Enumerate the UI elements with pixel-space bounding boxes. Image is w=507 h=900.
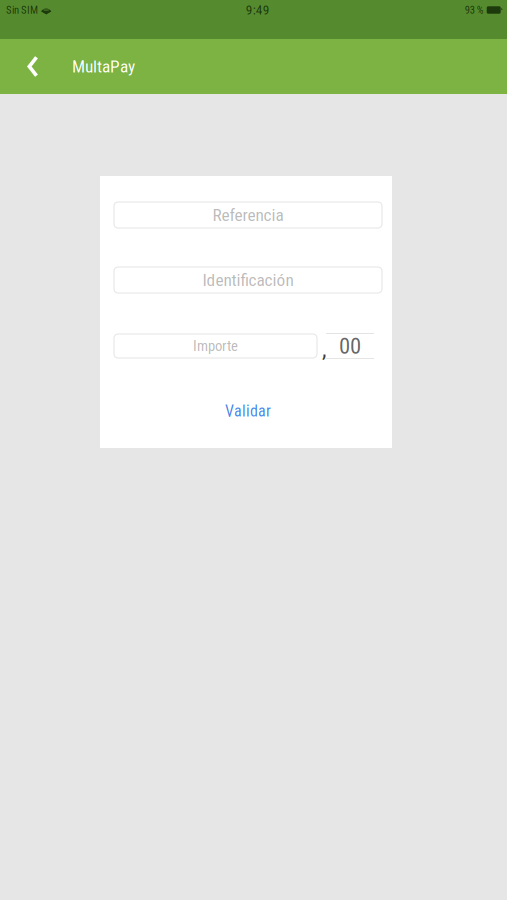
staticText: MultaPay — [72, 56, 135, 77]
staticText: 00 — [339, 333, 361, 359]
staticText: Referencia — [212, 205, 283, 225]
button[interactable]: Referencia — [114, 202, 382, 228]
staticText: Importe — [193, 337, 238, 355]
staticText: Validar — [225, 402, 271, 420]
staticText: Identificación — [202, 270, 293, 290]
button[interactable]: Validar — [114, 398, 382, 424]
staticText: Sin SIM — [6, 4, 38, 16]
button[interactable]: Back — [11, 39, 55, 94]
button[interactable]: Importe — [114, 334, 317, 358]
staticText: , — [322, 335, 326, 362]
button[interactable]: Identificación — [114, 267, 382, 293]
staticText: 9:49 — [246, 2, 270, 18]
staticText: 93 % — [465, 4, 484, 16]
button[interactable]: 00 — [326, 333, 374, 359]
